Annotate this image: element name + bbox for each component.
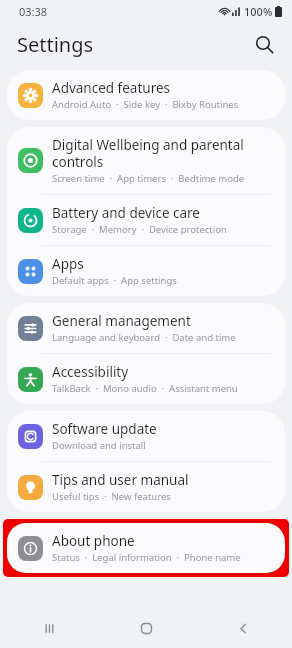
staticText: Screen time · App timers · Bedtime mode: [52, 172, 245, 185]
staticText: Tips and user manual: [52, 471, 189, 489]
button[interactable]: General management: [7, 303, 285, 353]
staticText: Download and install: [52, 439, 146, 452]
staticText: Battery and device care: [52, 204, 200, 222]
button[interactable]: Digital Wellbeing and parental controls: [7, 127, 285, 194]
staticText: TalkBack · Mono audio · Assistant menu: [52, 382, 238, 395]
button[interactable]: Accessibility: [7, 354, 285, 404]
staticText: Android Auto · Side key · Bixby Routines: [52, 98, 239, 111]
button[interactable]: About phone: [7, 523, 285, 573]
staticText: Storage · Memory · Device protection: [52, 223, 227, 236]
staticText: Useful tips · New features: [52, 490, 171, 503]
staticText: Accessibility: [52, 363, 129, 381]
button[interactable]: Software update: [7, 411, 285, 461]
staticText: About phone: [52, 532, 135, 550]
button[interactable]: Battery and device care: [7, 195, 285, 245]
staticText: Software update: [52, 420, 157, 438]
staticText: Status · Legal information · Phone name: [52, 551, 241, 564]
button[interactable]: Tips and user manual: [7, 462, 285, 512]
staticText: Language and keyboard · Date and time: [52, 331, 236, 344]
staticText: 03:38: [19, 4, 48, 19]
button[interactable]: Apps: [7, 246, 285, 296]
button[interactable]: Recent apps: [0, 608, 98, 648]
button[interactable]: Advanced features: [7, 70, 285, 120]
button[interactable]: Home: [98, 608, 195, 648]
button[interactable]: Back: [195, 608, 292, 648]
staticText: Digital Wellbeing and parental controls: [52, 136, 273, 171]
staticText: 100%: [244, 4, 273, 19]
staticText: General management: [52, 312, 191, 330]
staticText: Advanced features: [52, 79, 171, 97]
staticText: Settings: [17, 31, 94, 58]
button[interactable]: Search: [246, 26, 282, 62]
staticText: Apps: [52, 255, 84, 273]
staticText: Default apps · App settings: [52, 274, 177, 287]
